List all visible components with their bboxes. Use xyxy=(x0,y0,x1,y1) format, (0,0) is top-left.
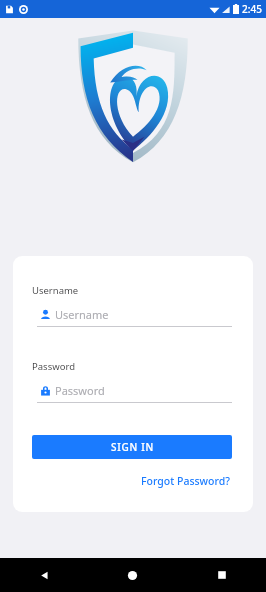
staticText: Forgot Password? xyxy=(141,474,230,488)
staticText: SIGN IN xyxy=(111,440,154,454)
button[interactable]: Recent apps xyxy=(177,558,266,592)
button[interactable]: SIGN IN xyxy=(32,435,232,459)
button[interactable]: Username xyxy=(32,306,232,327)
staticText: 2:45 xyxy=(242,2,262,16)
staticText: Username xyxy=(55,307,109,322)
staticText: Password xyxy=(32,360,75,373)
button[interactable]: Password xyxy=(32,382,232,403)
staticText: Username xyxy=(32,284,79,297)
staticText: Password xyxy=(55,383,105,398)
button[interactable]: Back xyxy=(0,558,88,592)
button[interactable]: Forgot Password? xyxy=(139,472,232,490)
button[interactable]: Home xyxy=(88,558,177,592)
